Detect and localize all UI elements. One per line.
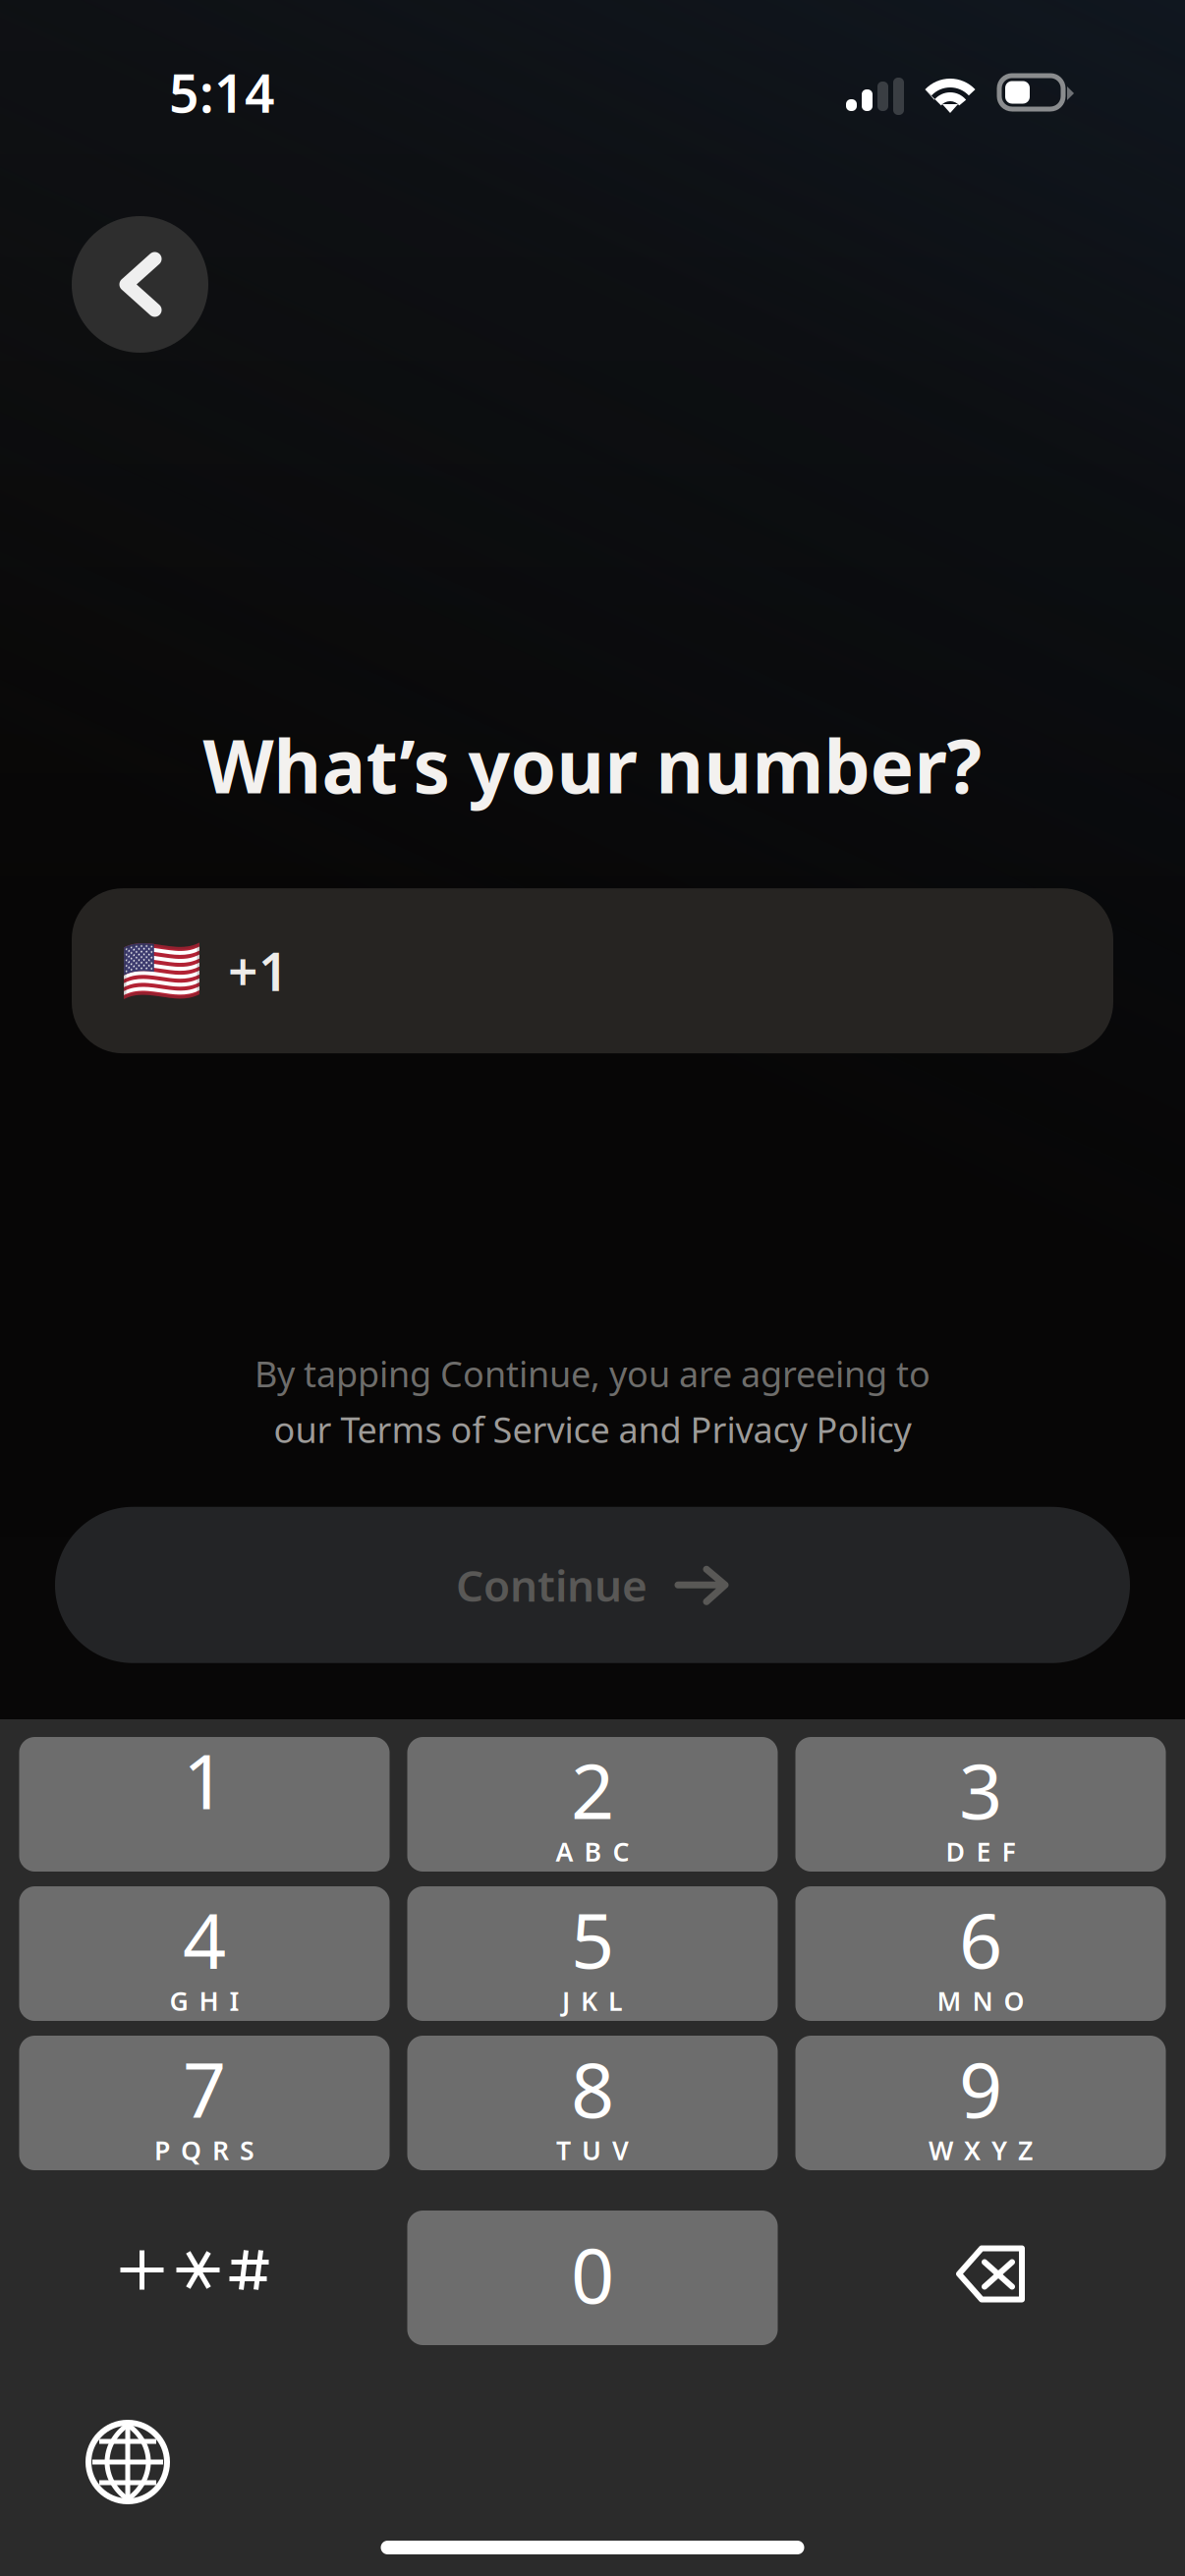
button[interactable]: 2 bbox=[407, 1737, 778, 1872]
staticText: 8 bbox=[571, 2038, 614, 2139]
staticText: 1 bbox=[183, 1729, 226, 1830]
button[interactable]: Next keyboard bbox=[88, 2423, 167, 2501]
staticText: 4 bbox=[183, 1888, 226, 1989]
button[interactable]: 8 bbox=[407, 2036, 778, 2170]
button[interactable]: 4 bbox=[19, 1886, 390, 2021]
staticText: What’s your number? bbox=[203, 716, 982, 814]
staticText: MNO bbox=[937, 1983, 1024, 2018]
staticText: JKL bbox=[562, 1983, 623, 2018]
staticText: By tapping Continue, you are agreeing to bbox=[254, 1350, 931, 1397]
button[interactable]: 6 bbox=[795, 1886, 1166, 2021]
button[interactable]: Delete bbox=[795, 2211, 1166, 2345]
staticText: 7 bbox=[183, 2038, 226, 2139]
staticText: ABC bbox=[556, 1834, 629, 1869]
staticText: +1 bbox=[228, 936, 289, 1006]
staticText: DEF bbox=[946, 1834, 1016, 1869]
staticText: Continue bbox=[456, 1556, 648, 1614]
staticText: 5 bbox=[571, 1888, 614, 1989]
button[interactable]: Plus star hash bbox=[19, 2211, 390, 2345]
staticText: our Terms of Service and Privacy Policy bbox=[274, 1406, 911, 1453]
button[interactable]: Continue bbox=[55, 1507, 1130, 1663]
staticText: 0 bbox=[571, 2223, 614, 2324]
button[interactable]: 0 bbox=[407, 2211, 778, 2345]
button[interactable]: 5 bbox=[407, 1886, 778, 2021]
staticText: 2 bbox=[571, 1739, 614, 1840]
staticText: 9 bbox=[959, 2038, 1002, 2139]
staticText: 🇺🇸 bbox=[121, 933, 202, 1008]
button[interactable]: 1 bbox=[19, 1737, 390, 1872]
staticText: 5:14 bbox=[169, 58, 275, 127]
staticText: WXYZ bbox=[929, 2133, 1033, 2167]
staticText: GHI bbox=[169, 1983, 239, 2018]
staticText: TUV bbox=[556, 2133, 629, 2167]
button[interactable]: 🇺🇸 bbox=[72, 888, 1113, 1053]
staticText: 3 bbox=[959, 1739, 1002, 1840]
button[interactable]: 3 bbox=[795, 1737, 1166, 1872]
button[interactable]: 9 bbox=[795, 2036, 1166, 2170]
staticText: 6 bbox=[959, 1888, 1002, 1989]
staticText: PQRS bbox=[154, 2133, 254, 2167]
button[interactable]: Back bbox=[72, 216, 208, 353]
button[interactable]: 7 bbox=[19, 2036, 390, 2170]
